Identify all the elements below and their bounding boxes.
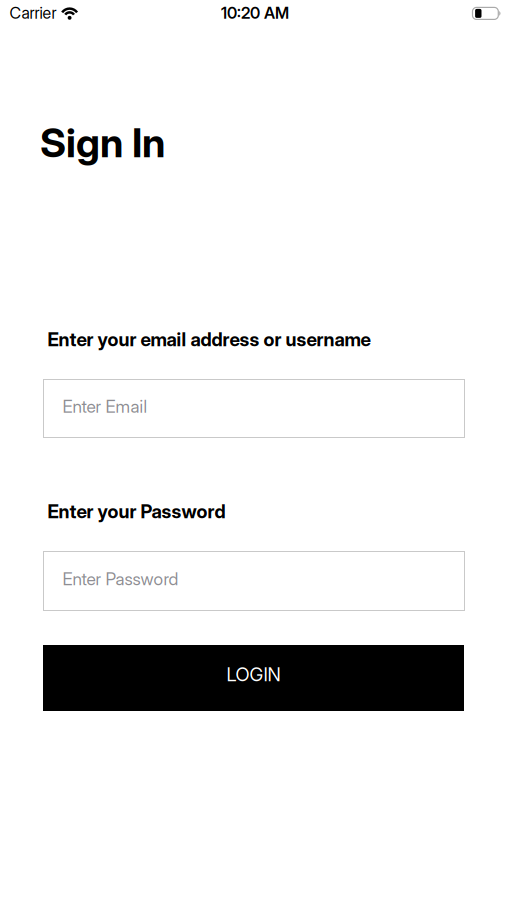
staticText: Enter Password	[62, 569, 178, 589]
staticText: Enter your Password	[47, 500, 225, 522]
staticText: Carrier	[9, 4, 56, 22]
button[interactable]: Enter Password	[43, 551, 465, 611]
button[interactable]: LOGIN	[43, 645, 464, 711]
staticText: Enter Email	[62, 396, 147, 417]
staticText: Enter your email address or username	[47, 328, 370, 350]
staticText: Sign In	[40, 119, 165, 166]
button[interactable]: Enter Email	[43, 379, 465, 438]
staticText: 10:20 AM	[221, 4, 289, 22]
staticText: LOGIN	[226, 663, 280, 685]
